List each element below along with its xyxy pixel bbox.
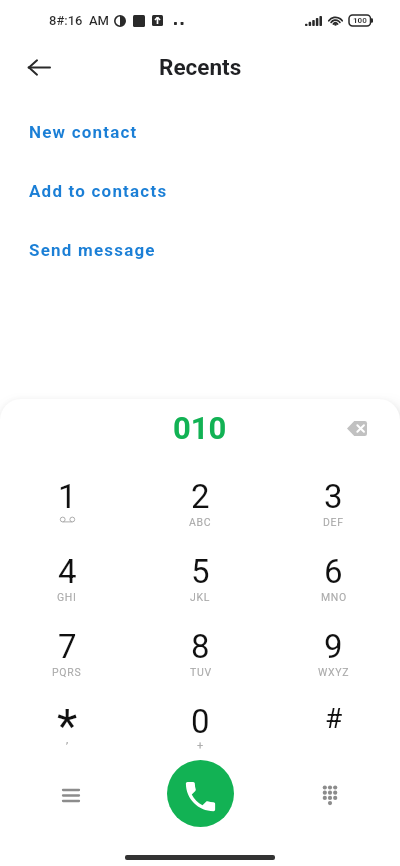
staticText: PQRS: [52, 666, 82, 678]
staticText: #: [325, 702, 343, 735]
staticText: 010: [173, 410, 227, 446]
button[interactable]: 6: [267, 532, 400, 607]
staticText: 6: [324, 552, 343, 591]
button[interactable]: 3: [267, 457, 400, 532]
staticText: 7: [58, 627, 77, 666]
button[interactable]: Backspace: [338, 408, 378, 448]
staticText: +: [197, 739, 204, 752]
button[interactable]: 5: [134, 532, 267, 607]
button[interactable]: Send message: [0, 220, 400, 279]
button[interactable]: 4: [0, 532, 134, 607]
button[interactable]: 1: [0, 457, 134, 532]
button[interactable]: Menu: [48, 773, 93, 818]
staticText: Send message: [29, 240, 156, 260]
staticText: MNO: [321, 591, 347, 603]
staticText: 100: [353, 16, 367, 25]
staticText: Add to contacts: [29, 181, 168, 201]
staticText: JKL: [190, 591, 211, 603]
staticText: 8#:16 AM: [49, 13, 109, 28]
button[interactable]: 9: [267, 607, 400, 682]
button[interactable]: 7: [0, 607, 134, 682]
staticText: 9: [324, 627, 343, 666]
staticText: 4: [58, 552, 77, 591]
staticText: TUV: [190, 666, 212, 678]
staticText: ABC: [189, 516, 212, 528]
staticText: DEF: [323, 516, 344, 528]
button[interactable]: *: [0, 682, 134, 757]
staticText: 8: [191, 627, 210, 666]
staticText: New contact: [29, 122, 138, 142]
staticText: 0: [191, 702, 210, 741]
staticText: 1: [58, 477, 77, 516]
button[interactable]: 0: [134, 682, 267, 757]
staticText: 5: [191, 552, 210, 591]
staticText: GHI: [57, 591, 77, 603]
button[interactable]: Call: [167, 760, 234, 827]
button[interactable]: #: [267, 682, 400, 757]
staticText: 3: [324, 477, 343, 516]
button[interactable]: 2: [134, 457, 267, 532]
staticText: Recents: [159, 54, 242, 80]
button[interactable]: Back: [18, 46, 60, 88]
button[interactable]: Dialpad: [307, 772, 352, 817]
button[interactable]: Add to contacts: [0, 161, 400, 220]
button[interactable]: New contact: [0, 102, 400, 161]
button[interactable]: 8: [134, 607, 267, 682]
staticText: WXYZ: [318, 666, 350, 678]
staticText: 2: [191, 477, 210, 516]
staticText: ,: [66, 733, 69, 746]
staticText: *: [57, 698, 78, 753]
